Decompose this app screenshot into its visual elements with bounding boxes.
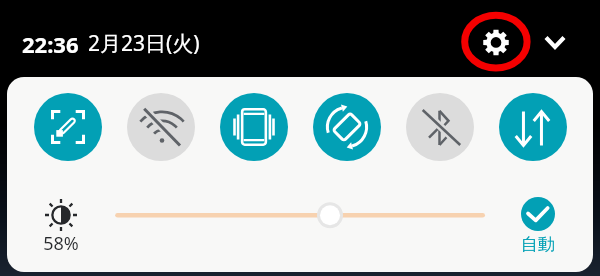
- staticText: 2月23日(火): [88, 29, 200, 58]
- button[interactable]: Bluetooth off: [406, 93, 474, 161]
- button[interactable]: Vibrate: [220, 93, 288, 161]
- button[interactable]: Auto rotate: [313, 93, 381, 161]
- button[interactable]: 自動: [510, 197, 566, 255]
- button[interactable]: Data usage: [499, 93, 567, 161]
- button[interactable]: Brightness: [111, 201, 490, 230]
- staticText: 22:36: [22, 29, 79, 59]
- button[interactable]: Expand quick settings: [540, 25, 570, 55]
- button[interactable]: Wi-Fi off: [127, 93, 195, 161]
- button[interactable]: Screenshot: [34, 93, 102, 161]
- staticText: 自動: [521, 234, 555, 255]
- staticText: 58%: [37, 231, 85, 256]
- button[interactable]: Settings: [461, 7, 531, 77]
